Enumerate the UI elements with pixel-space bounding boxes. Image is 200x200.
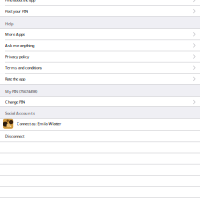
staticText: Connect as: Emila Wlatter — [17, 121, 62, 126]
staticText: Post your PIN — [5, 8, 28, 14]
staticText: Privacy policy — [5, 54, 29, 59]
button[interactable]: Change PIN — [0, 96, 200, 108]
button[interactable]: Find about the app — [0, 0, 200, 6]
staticText: More Apps — [5, 32, 25, 37]
button[interactable]: More Apps — [0, 29, 200, 40]
button[interactable]: Connect as: Emila Wlatter — [0, 118, 200, 131]
staticText: Rate the app — [5, 76, 25, 81]
staticText: Ask me anything — [5, 43, 34, 48]
staticText: My PIN (75674498) — [5, 89, 37, 94]
staticText: Social Accounts — [5, 111, 35, 116]
button[interactable]: Post your PIN — [0, 5, 200, 17]
button[interactable]: Disconnect — [0, 131, 200, 142]
staticText: Terms and conditions — [5, 65, 42, 70]
staticText: Help — [5, 21, 14, 26]
staticText: Disconnect — [5, 134, 24, 139]
staticText: Find about the app — [5, 0, 35, 3]
button[interactable]: Ask me anything — [0, 40, 200, 51]
button[interactable]: Terms and conditions — [0, 62, 200, 73]
button[interactable]: Rate the app — [0, 73, 200, 84]
staticText: Change PIN — [5, 99, 25, 105]
button[interactable]: Privacy policy — [0, 51, 200, 62]
